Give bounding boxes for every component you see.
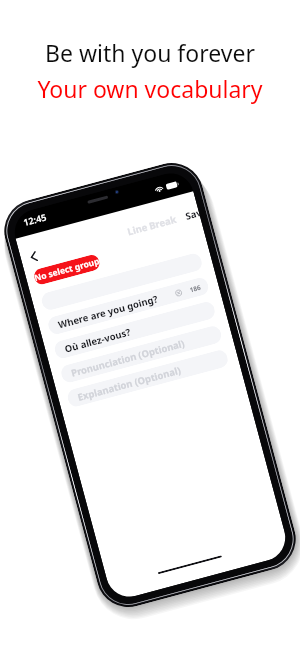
staticText: Où allez-vous? [63, 325, 132, 356]
staticText: Explanation (Optional) [76, 364, 183, 404]
button[interactable]: Pronunciation (Optional) [59, 324, 223, 384]
staticText: 12:45 [22, 210, 48, 228]
staticText: Save [184, 207, 200, 222]
staticText: Pronunciation (Optional) [70, 337, 186, 380]
staticText: Be with you forever [45, 37, 255, 68]
button[interactable]: Explanation (Optional) [66, 348, 230, 408]
button[interactable]: No select group [32, 253, 101, 286]
staticText: 186 [189, 282, 202, 294]
button[interactable]: Line Break [126, 213, 178, 237]
staticText: Where are you going? [57, 292, 160, 331]
button[interactable]: Où allez-vous? [53, 300, 217, 360]
staticText: Your own vocabulary [37, 73, 263, 104]
button[interactable]: Back [24, 247, 44, 266]
staticText: No select group [33, 255, 101, 284]
button[interactable] [40, 252, 204, 312]
staticText: Line Break [126, 213, 178, 237]
button[interactable]: Save [184, 207, 200, 222]
button[interactable]: Where are you going? [46, 276, 210, 336]
